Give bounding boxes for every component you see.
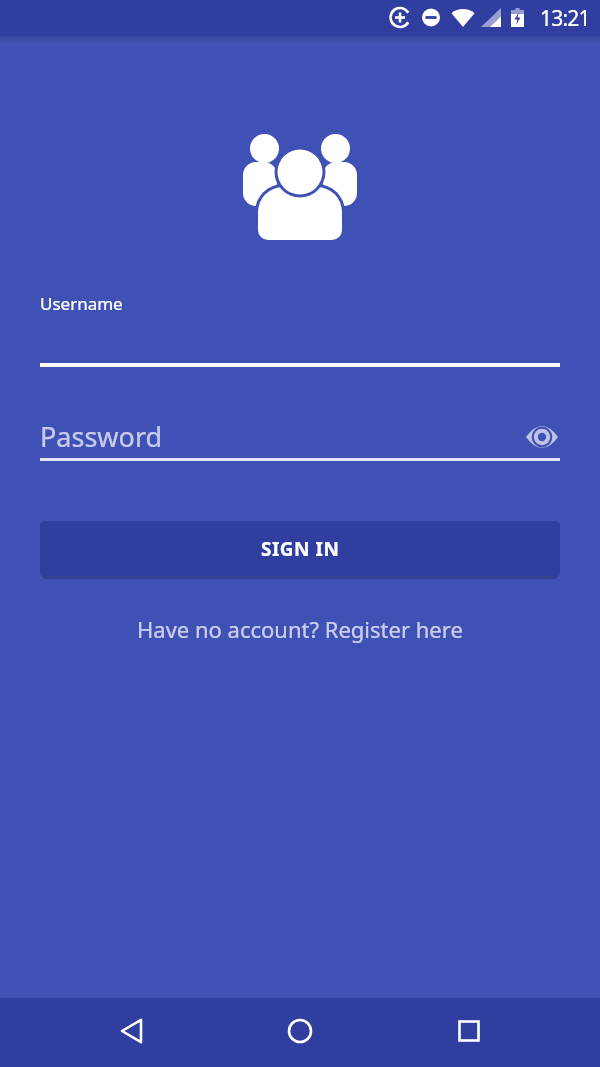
staticText: Password [40, 418, 163, 455]
button[interactable]: SIGN IN [40, 521, 560, 576]
staticText: Username [40, 292, 123, 315]
button[interactable] [40, 414, 560, 460]
button[interactable] [40, 320, 560, 367]
button[interactable] [108, 1007, 156, 1055]
button[interactable]: Have no account? Register here [137, 614, 463, 644]
staticText: SIGN IN [261, 536, 340, 562]
button[interactable] [276, 1007, 324, 1055]
button[interactable] [518, 418, 566, 456]
staticText: 13:21 [540, 4, 590, 33]
button[interactable] [445, 1007, 493, 1055]
